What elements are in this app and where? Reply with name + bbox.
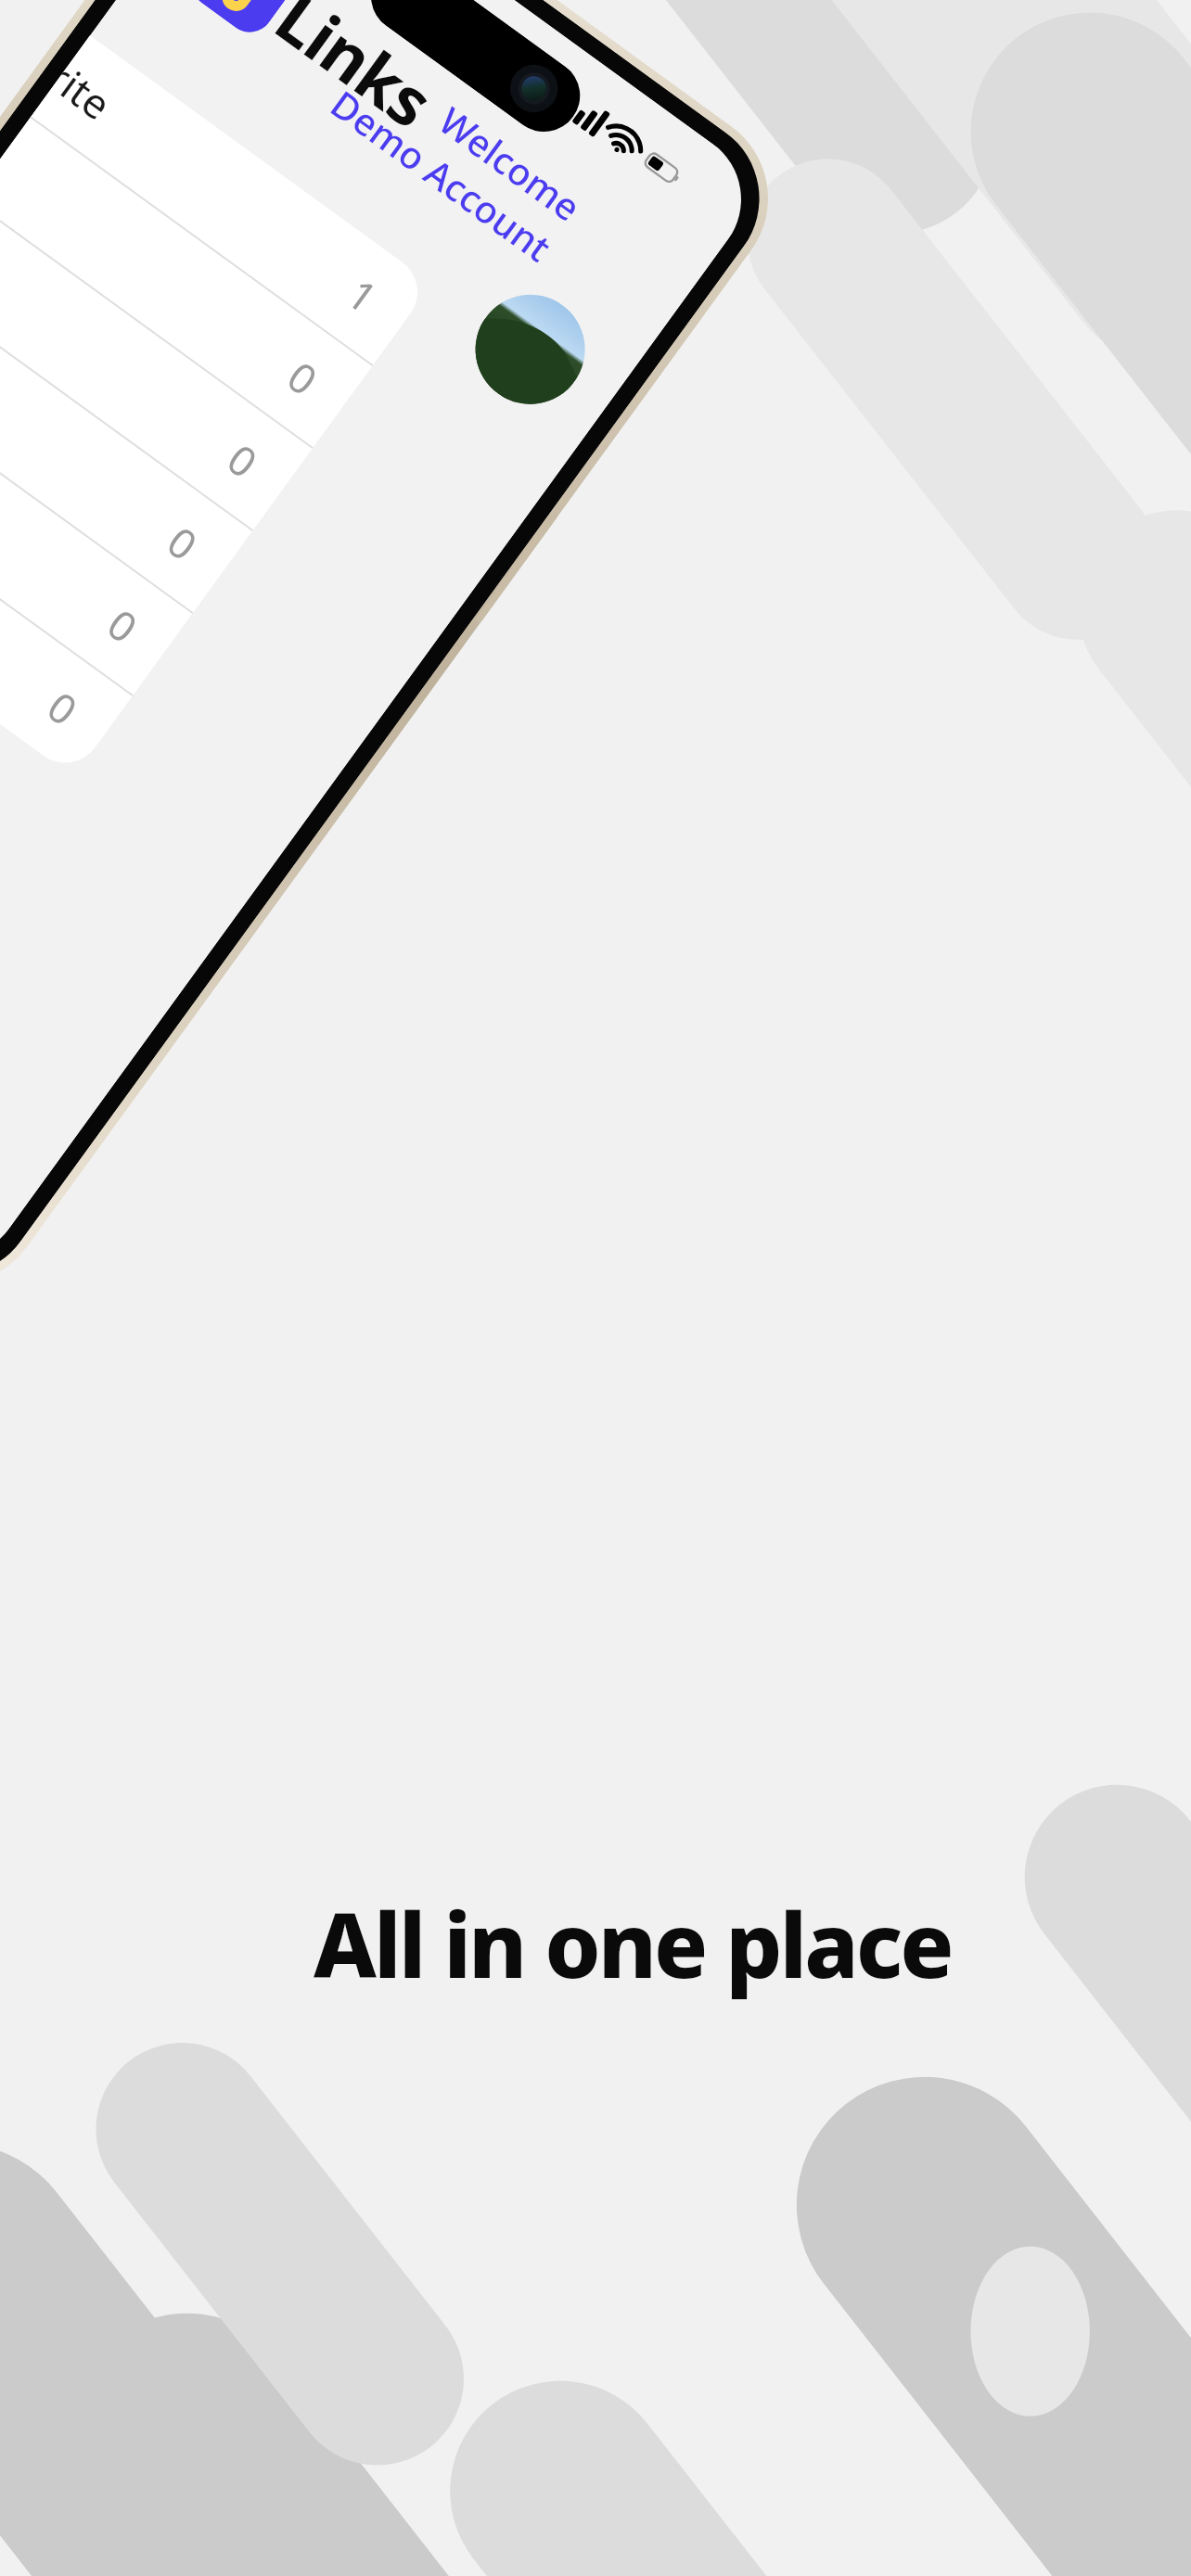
staticText: Welcome	[430, 95, 591, 231]
other: Links app icon	[183, 0, 307, 42]
staticText: Demo Account	[322, 78, 562, 272]
button[interactable]: Archive	[0, 364, 193, 695]
button[interactable]: Welcome	[322, 38, 591, 272]
staticText: Links	[259, 0, 451, 147]
staticText: 0	[97, 596, 149, 655]
button[interactable]: Food review links	[0, 517, 3, 933]
staticText: Links	[0, 136, 18, 181]
staticText: 1	[337, 266, 389, 325]
staticText: Favorite	[44, 53, 123, 132]
button[interactable]: Profile	[454, 273, 607, 426]
staticText: All in one place	[314, 1882, 952, 2004]
staticText: 0	[157, 513, 209, 573]
button[interactable]: Trash	[0, 446, 133, 777]
button[interactable]: Favorite	[31, 35, 432, 365]
staticText: 0	[277, 348, 329, 408]
staticText: 0	[217, 431, 269, 490]
button[interactable]: Links	[0, 116, 373, 447]
button[interactable]: Links app icon	[182, 0, 451, 147]
button[interactable]: Images	[0, 281, 253, 612]
button[interactable]: Notes	[0, 199, 313, 530]
staticText: 0	[37, 678, 89, 738]
